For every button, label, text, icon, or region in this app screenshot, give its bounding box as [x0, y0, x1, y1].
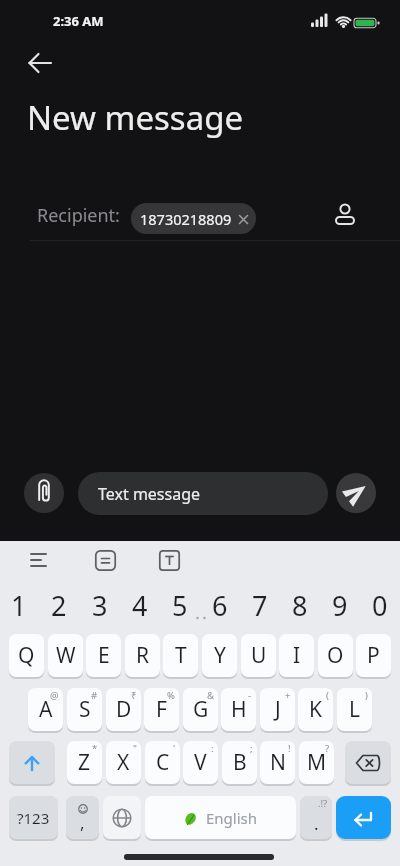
staticText: Z: [78, 748, 91, 777]
button[interactable]: [154, 546, 184, 574]
staticText: ?123: [17, 808, 50, 828]
staticText: ,: [80, 811, 85, 834]
button[interactable]: [336, 796, 391, 839]
button[interactable]: E: [86, 634, 121, 677]
button[interactable]: W: [48, 634, 83, 677]
staticText: ₹: [131, 689, 137, 702]
staticText: 3: [92, 587, 108, 619]
button[interactable]: 0: [360, 587, 400, 619]
button[interactable]: 4: [120, 587, 160, 619]
button[interactable]: [336, 473, 376, 513]
button[interactable]: J: [260, 688, 295, 731]
button[interactable]: U: [241, 634, 276, 677]
button[interactable]: [24, 47, 56, 79]
staticText: D: [116, 695, 132, 724]
staticText: Q: [18, 641, 35, 670]
button[interactable]: 8: [280, 587, 320, 619]
staticText: Y: [214, 641, 226, 670]
button[interactable]: T: [163, 634, 198, 677]
staticText: 0: [372, 587, 388, 619]
button[interactable]: A: [28, 688, 63, 731]
button[interactable]: I: [279, 634, 314, 677]
button[interactable]: 18730218809: [131, 203, 256, 234]
staticText: K: [309, 695, 322, 724]
button[interactable]: 3: [80, 587, 120, 619]
button[interactable]: [24, 473, 64, 513]
button[interactable]: ,: [66, 796, 99, 839]
staticText: 8: [292, 587, 308, 619]
staticText: .: [314, 812, 319, 835]
button[interactable]: Z: [67, 741, 102, 784]
staticText: %: [167, 689, 175, 702]
button[interactable]: M: [299, 741, 334, 784]
staticText: (: [326, 689, 329, 702]
button[interactable]: X: [106, 741, 141, 784]
staticText: !: [288, 742, 291, 755]
button[interactable]: [9, 741, 55, 784]
button[interactable]: S: [67, 688, 102, 731]
button[interactable]: [90, 546, 120, 574]
button[interactable]: [103, 796, 141, 839]
button[interactable]: 2: [39, 587, 79, 619]
staticText: F: [156, 695, 167, 724]
staticText: 1: [11, 587, 27, 619]
staticText: V: [194, 748, 207, 777]
staticText: P: [367, 641, 380, 670]
staticText: X: [117, 748, 130, 777]
staticText: 18730218809: [140, 209, 232, 229]
button[interactable]: V: [183, 741, 218, 784]
button[interactable]: 5: [160, 587, 200, 619]
button[interactable]: N: [260, 741, 295, 784]
staticText: Text message: [98, 483, 201, 505]
button[interactable]: 7: [240, 587, 280, 619]
staticText: 7: [252, 587, 268, 619]
staticText: H: [231, 695, 247, 724]
button[interactable]: [345, 741, 391, 784]
button[interactable]: B: [222, 741, 257, 784]
button[interactable]: 9: [320, 587, 360, 619]
button[interactable]: [331, 199, 359, 229]
staticText: E: [98, 641, 110, 670]
staticText: :: [211, 742, 214, 755]
staticText: T: [175, 641, 187, 670]
button[interactable]: Y: [202, 634, 237, 677]
button[interactable]: P: [356, 634, 391, 677]
button[interactable]: K: [298, 688, 333, 731]
button[interactable]: [24, 546, 54, 574]
button[interactable]: .: [300, 796, 332, 839]
button[interactable]: D: [106, 688, 141, 731]
staticText: J: [275, 695, 281, 724]
staticText: 2: [51, 587, 67, 619]
button[interactable]: Q: [9, 634, 44, 677]
staticText: 6: [212, 587, 228, 619]
staticText: -: [248, 689, 252, 702]
staticText: S: [79, 695, 91, 724]
staticText: N: [270, 748, 286, 777]
button[interactable]: O: [318, 634, 353, 677]
staticText: U: [251, 641, 267, 670]
staticText: 4: [132, 587, 148, 619]
button[interactable]: G: [183, 688, 218, 731]
staticText: ?: [325, 742, 330, 755]
staticText: ;: [250, 742, 253, 755]
button[interactable]: L: [337, 688, 372, 731]
staticText: Recipient:: [37, 203, 120, 228]
staticText: ": [133, 742, 137, 755]
button[interactable]: F: [144, 688, 179, 731]
button[interactable]: English: [145, 796, 296, 839]
staticText: ): [365, 689, 368, 702]
staticText: O: [327, 641, 344, 670]
button[interactable]: 6: [200, 587, 240, 619]
staticText: C: [156, 748, 170, 777]
staticText: .!?: [318, 797, 328, 810]
button[interactable]: H: [221, 688, 256, 731]
button[interactable]: ?123: [9, 796, 58, 839]
staticText: G: [193, 695, 209, 724]
button[interactable]: Text message: [78, 472, 328, 515]
button[interactable]: 1: [0, 587, 39, 619]
button[interactable]: C: [145, 741, 180, 784]
staticText: A: [39, 695, 53, 724]
button[interactable]: R: [125, 634, 160, 677]
staticText: English: [206, 808, 258, 828]
staticText: R: [136, 641, 150, 670]
